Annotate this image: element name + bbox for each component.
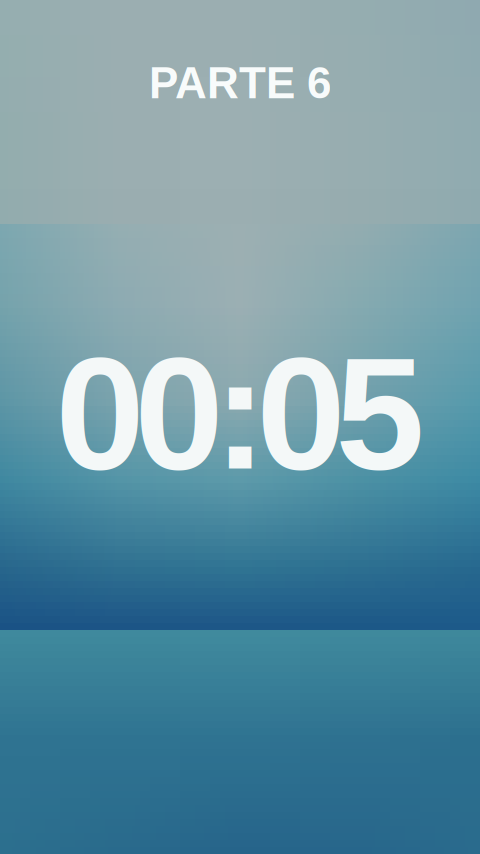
staticText: PARTE 6 bbox=[149, 58, 331, 108]
staticText: 00:05 bbox=[55, 324, 424, 502]
